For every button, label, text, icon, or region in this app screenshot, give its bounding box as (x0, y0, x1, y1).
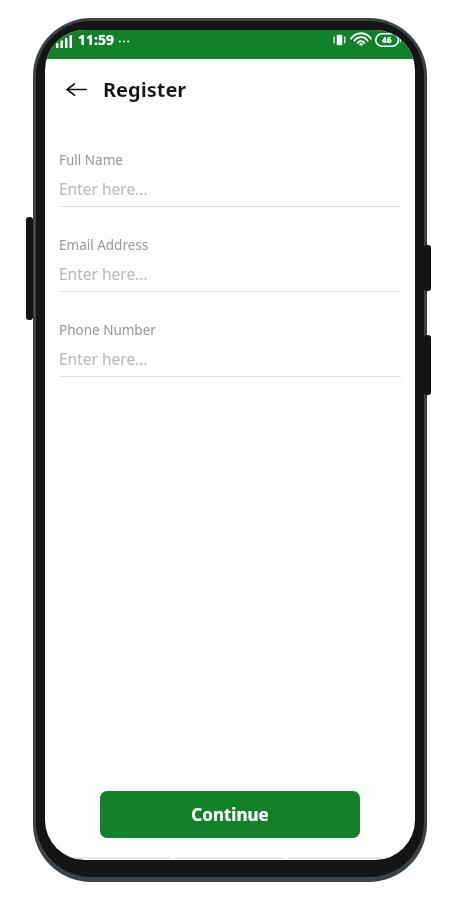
staticText: Full Name (59, 151, 123, 169)
staticText: Enter here... (59, 178, 148, 199)
staticText: Enter here... (59, 348, 148, 369)
staticText: Continue (191, 803, 269, 826)
button[interactable]: Back (59, 72, 93, 106)
staticText: Register (103, 76, 187, 103)
button[interactable]: Continue (100, 791, 360, 838)
staticText: 46 (382, 34, 392, 46)
staticText: Enter here... (59, 263, 148, 284)
button[interactable]: Email Address (59, 236, 401, 292)
button[interactable]: Full Name (59, 151, 401, 207)
staticText: Email Address (59, 236, 149, 254)
staticText: Phone Number (59, 321, 156, 339)
button[interactable]: Phone Number (59, 321, 401, 377)
staticText: 11:59 (78, 30, 114, 49)
